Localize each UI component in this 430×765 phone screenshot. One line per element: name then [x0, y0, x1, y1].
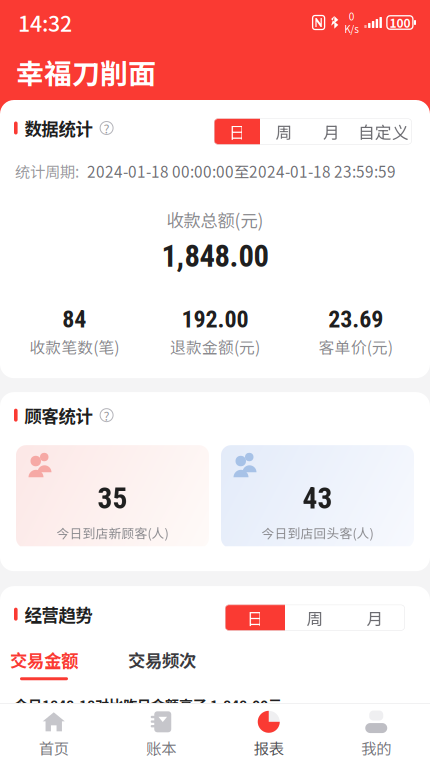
staticText: 收款总额(元): [166, 207, 263, 232]
staticText: 今日到店新顾客(人): [56, 524, 168, 542]
staticText: 我的: [361, 737, 391, 759]
staticText: 客单价(元): [319, 335, 393, 358]
staticText: 统计周期:: [15, 160, 79, 182]
staticText: 周: [306, 606, 323, 630]
staticText: 23.69: [328, 305, 383, 333]
button[interactable]: 我的: [322, 703, 430, 765]
staticText: 幸福刀削面: [16, 52, 156, 92]
staticText: 报表: [254, 737, 284, 759]
staticText: 收款笔数(笔): [29, 335, 119, 358]
staticText: 周: [275, 119, 292, 143]
button[interactable]: 报表: [215, 703, 322, 765]
staticText: 0: [349, 9, 355, 23]
staticText: 月: [366, 606, 383, 630]
staticText: 日: [246, 606, 263, 630]
staticText: 1,848.00: [161, 238, 268, 274]
button[interactable]: 自定义: [355, 118, 412, 144]
button[interactable]: 首页: [0, 703, 107, 765]
staticText: 经营趋势: [25, 602, 93, 627]
staticText: 自定义: [358, 119, 409, 143]
button[interactable]: 交易频次: [128, 647, 196, 680]
staticText: 日: [228, 119, 245, 143]
button[interactable]: 月: [308, 118, 355, 144]
button[interactable]: 日: [225, 605, 285, 631]
staticText: ?: [104, 119, 110, 137]
staticText: 今日1848.18对比昨日金额高了 1,848.00元: [14, 694, 282, 714]
staticText: 账本: [146, 737, 176, 759]
staticText: 今日到店回头客(人): [261, 524, 373, 542]
staticText: 交易频次: [128, 647, 196, 672]
staticText: 192.00: [181, 305, 248, 333]
staticText: 100: [389, 14, 410, 31]
button[interactable]: 周: [260, 118, 308, 144]
staticText: 退款金额(元): [170, 335, 260, 358]
staticText: 43: [302, 481, 332, 516]
staticText: 顾客统计: [25, 403, 93, 428]
staticText: 月: [323, 119, 340, 143]
staticText: 交易金额: [10, 647, 78, 672]
staticText: 首页: [39, 737, 69, 759]
button[interactable]: 日: [214, 118, 260, 144]
staticText: 84: [62, 305, 86, 333]
button[interactable]: 账本: [107, 703, 215, 765]
button[interactable]: 月: [345, 605, 405, 631]
staticText: ?: [104, 406, 110, 424]
staticText: 14:32: [18, 7, 72, 38]
staticText: 35: [97, 481, 127, 516]
staticText: 2024-01-18 00:00:00至2024-01-18 23:59:59: [87, 160, 396, 182]
staticText: 数据统计: [25, 115, 93, 141]
staticText: K/s: [344, 21, 359, 36]
button[interactable]: 交易金额: [10, 647, 78, 680]
button[interactable]: 周: [285, 605, 345, 631]
